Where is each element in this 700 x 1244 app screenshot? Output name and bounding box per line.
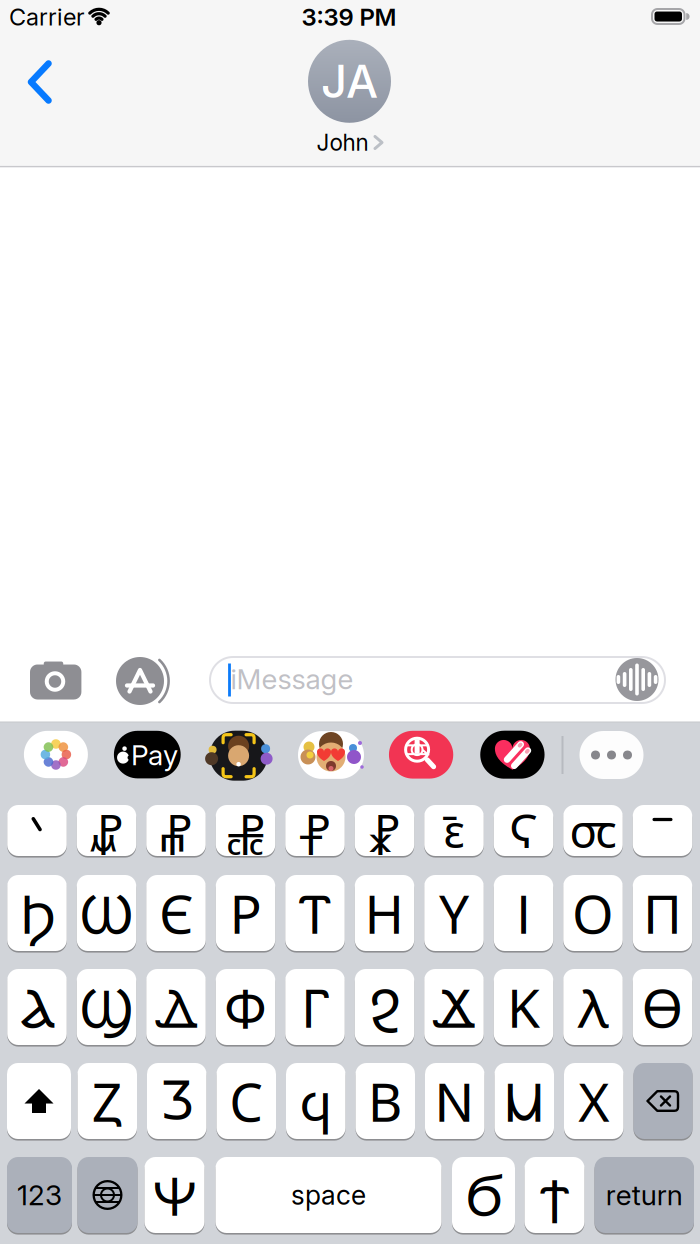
- button[interactable]: Ⲗ: [563, 969, 623, 1045]
- staticText: ⳪: [569, 800, 616, 861]
- button[interactable]: ⳦: [146, 805, 206, 856]
- button[interactable]: Ⲏ: [355, 875, 414, 951]
- staticText: Ⲗ: [577, 971, 608, 1043]
- staticText: Ⲅ: [301, 971, 329, 1043]
- button[interactable]: [633, 805, 692, 856]
- button[interactable]: Ʒ: [147, 1063, 206, 1139]
- staticText: Ϣ: [79, 971, 134, 1043]
- staticText: Ϛ: [509, 800, 538, 861]
- staticText: Ⲯ: [152, 1159, 196, 1231]
- staticText: Ⲧ: [298, 877, 331, 949]
- button[interactable]: ⳪: [563, 805, 623, 856]
- button[interactable]: Ⲕ: [494, 969, 553, 1045]
- button[interactable]: Ⲱ: [77, 875, 136, 951]
- staticText: return: [606, 1178, 683, 1212]
- button[interactable]: [7, 805, 67, 856]
- staticText: Ϫ: [432, 971, 476, 1043]
- button[interactable]: iMessage apps: [116, 656, 174, 706]
- button[interactable]: Ⲇ: [146, 969, 206, 1045]
- staticText: Ⲩ: [439, 877, 469, 949]
- staticText: Ⲍ: [92, 1065, 123, 1137]
- button[interactable]: Ⲁ: [7, 969, 67, 1045]
- button[interactable]: Ⲯ: [144, 1157, 204, 1233]
- button[interactable]: Ϧ: [7, 875, 67, 951]
- staticText: Ⲣ: [229, 877, 261, 949]
- staticText: Ⲫ: [224, 971, 267, 1043]
- staticText: Ⲛ: [434, 1065, 475, 1137]
- button[interactable]: Ⲍ: [77, 1063, 137, 1139]
- button[interactable]: iMessage text field: [209, 656, 666, 704]
- button[interactable]: ⳨: [285, 805, 345, 856]
- button[interactable]: Ⲣ: [216, 875, 275, 951]
- button[interactable]: Ⲧ: [285, 875, 345, 951]
- staticText: Ϧ: [19, 877, 54, 949]
- button[interactable]: ⳥: [77, 805, 136, 856]
- button[interactable]: Photos: [24, 731, 88, 778]
- button[interactable]: Ϛ: [494, 805, 553, 856]
- button[interactable]: Ⲛ: [425, 1063, 484, 1139]
- staticText: ⳧: [226, 800, 265, 861]
- button[interactable]: ⳩: [355, 805, 414, 856]
- button[interactable]: Ⲓ: [494, 875, 553, 951]
- staticText: Ⲱ: [79, 877, 134, 949]
- button[interactable]: Shift: [7, 1063, 71, 1139]
- staticText: Pay: [131, 738, 178, 772]
- staticText: JA: [321, 54, 378, 109]
- button[interactable]: Back: [28, 61, 51, 102]
- button[interactable]: Camera: [30, 659, 82, 700]
- button[interactable]: ⳧: [216, 805, 275, 856]
- button[interactable]: Next keyboard: [77, 1157, 137, 1233]
- staticText: Ⲕ: [507, 971, 540, 1043]
- button[interactable]: ϥ: [286, 1063, 345, 1139]
- button[interactable]: John contact: [308, 40, 391, 123]
- staticText: Ⲇ: [154, 971, 197, 1043]
- staticText: ⳥: [89, 800, 123, 861]
- staticText: Ⲉ: [159, 877, 193, 949]
- button[interactable]: 123: [7, 1157, 72, 1233]
- staticText: Ⲁ: [20, 971, 54, 1043]
- staticText: Ⲃ: [368, 1065, 403, 1137]
- staticText: Ⲏ: [364, 877, 404, 949]
- button[interactable]: Ⲙ: [494, 1063, 554, 1139]
- button[interactable]: Ⲃ: [355, 1063, 415, 1139]
- staticText: Ⲥ: [229, 1065, 263, 1137]
- button[interactable]: Ⲟ: [563, 875, 623, 951]
- button[interactable]: Ⲅ: [285, 969, 345, 1045]
- staticText: ⳨: [299, 800, 330, 861]
- button[interactable]: Ϣ: [77, 969, 136, 1045]
- button[interactable]: space: [215, 1157, 441, 1233]
- button[interactable]: ϯ: [524, 1157, 584, 1233]
- button[interactable]: #images: [389, 731, 453, 779]
- button[interactable]: Ϩ: [355, 969, 414, 1045]
- button[interactable]: Ϭ: [452, 1157, 515, 1233]
- staticText: John: [316, 129, 368, 156]
- button[interactable]: Ⲉ: [146, 875, 206, 951]
- staticText: Ⲑ: [641, 971, 683, 1043]
- button[interactable]: Delete: [633, 1063, 692, 1139]
- staticText: 123: [17, 1178, 62, 1212]
- button[interactable]: Ⲫ: [216, 969, 275, 1045]
- button[interactable]: Ⲥ: [216, 1063, 276, 1139]
- button[interactable]: Ⲩ: [424, 875, 484, 951]
- staticText: ϯ: [539, 1159, 569, 1231]
- staticText: Ⲓ: [516, 877, 531, 949]
- staticText: Ⲭ: [578, 1065, 609, 1137]
- button[interactable]: return: [594, 1157, 694, 1233]
- staticText: ⳦: [159, 800, 192, 861]
- button[interactable]: Ⲡ: [633, 875, 692, 951]
- button[interactable]: Conversation details: [316, 129, 383, 156]
- staticText: ε̄: [443, 800, 464, 861]
- button[interactable]: Ϫ: [424, 969, 484, 1045]
- button[interactable]: Memoji: [210, 731, 268, 781]
- button[interactable]: Digital Touch: [480, 731, 544, 779]
- staticText: Ⲙ: [503, 1065, 546, 1137]
- button[interactable]: More apps: [579, 731, 643, 779]
- button[interactable]: Memoji Stickers: [298, 731, 364, 779]
- staticText: Ⲡ: [643, 877, 682, 949]
- staticText: 3:39 PM: [301, 2, 396, 31]
- button[interactable]: Ⲑ: [633, 969, 692, 1045]
- staticText: Ⲟ: [572, 877, 614, 949]
- button[interactable]: Apple Pay: [114, 731, 181, 778]
- button[interactable]: ε̄: [424, 805, 484, 856]
- button[interactable]: Ⲭ: [564, 1063, 623, 1139]
